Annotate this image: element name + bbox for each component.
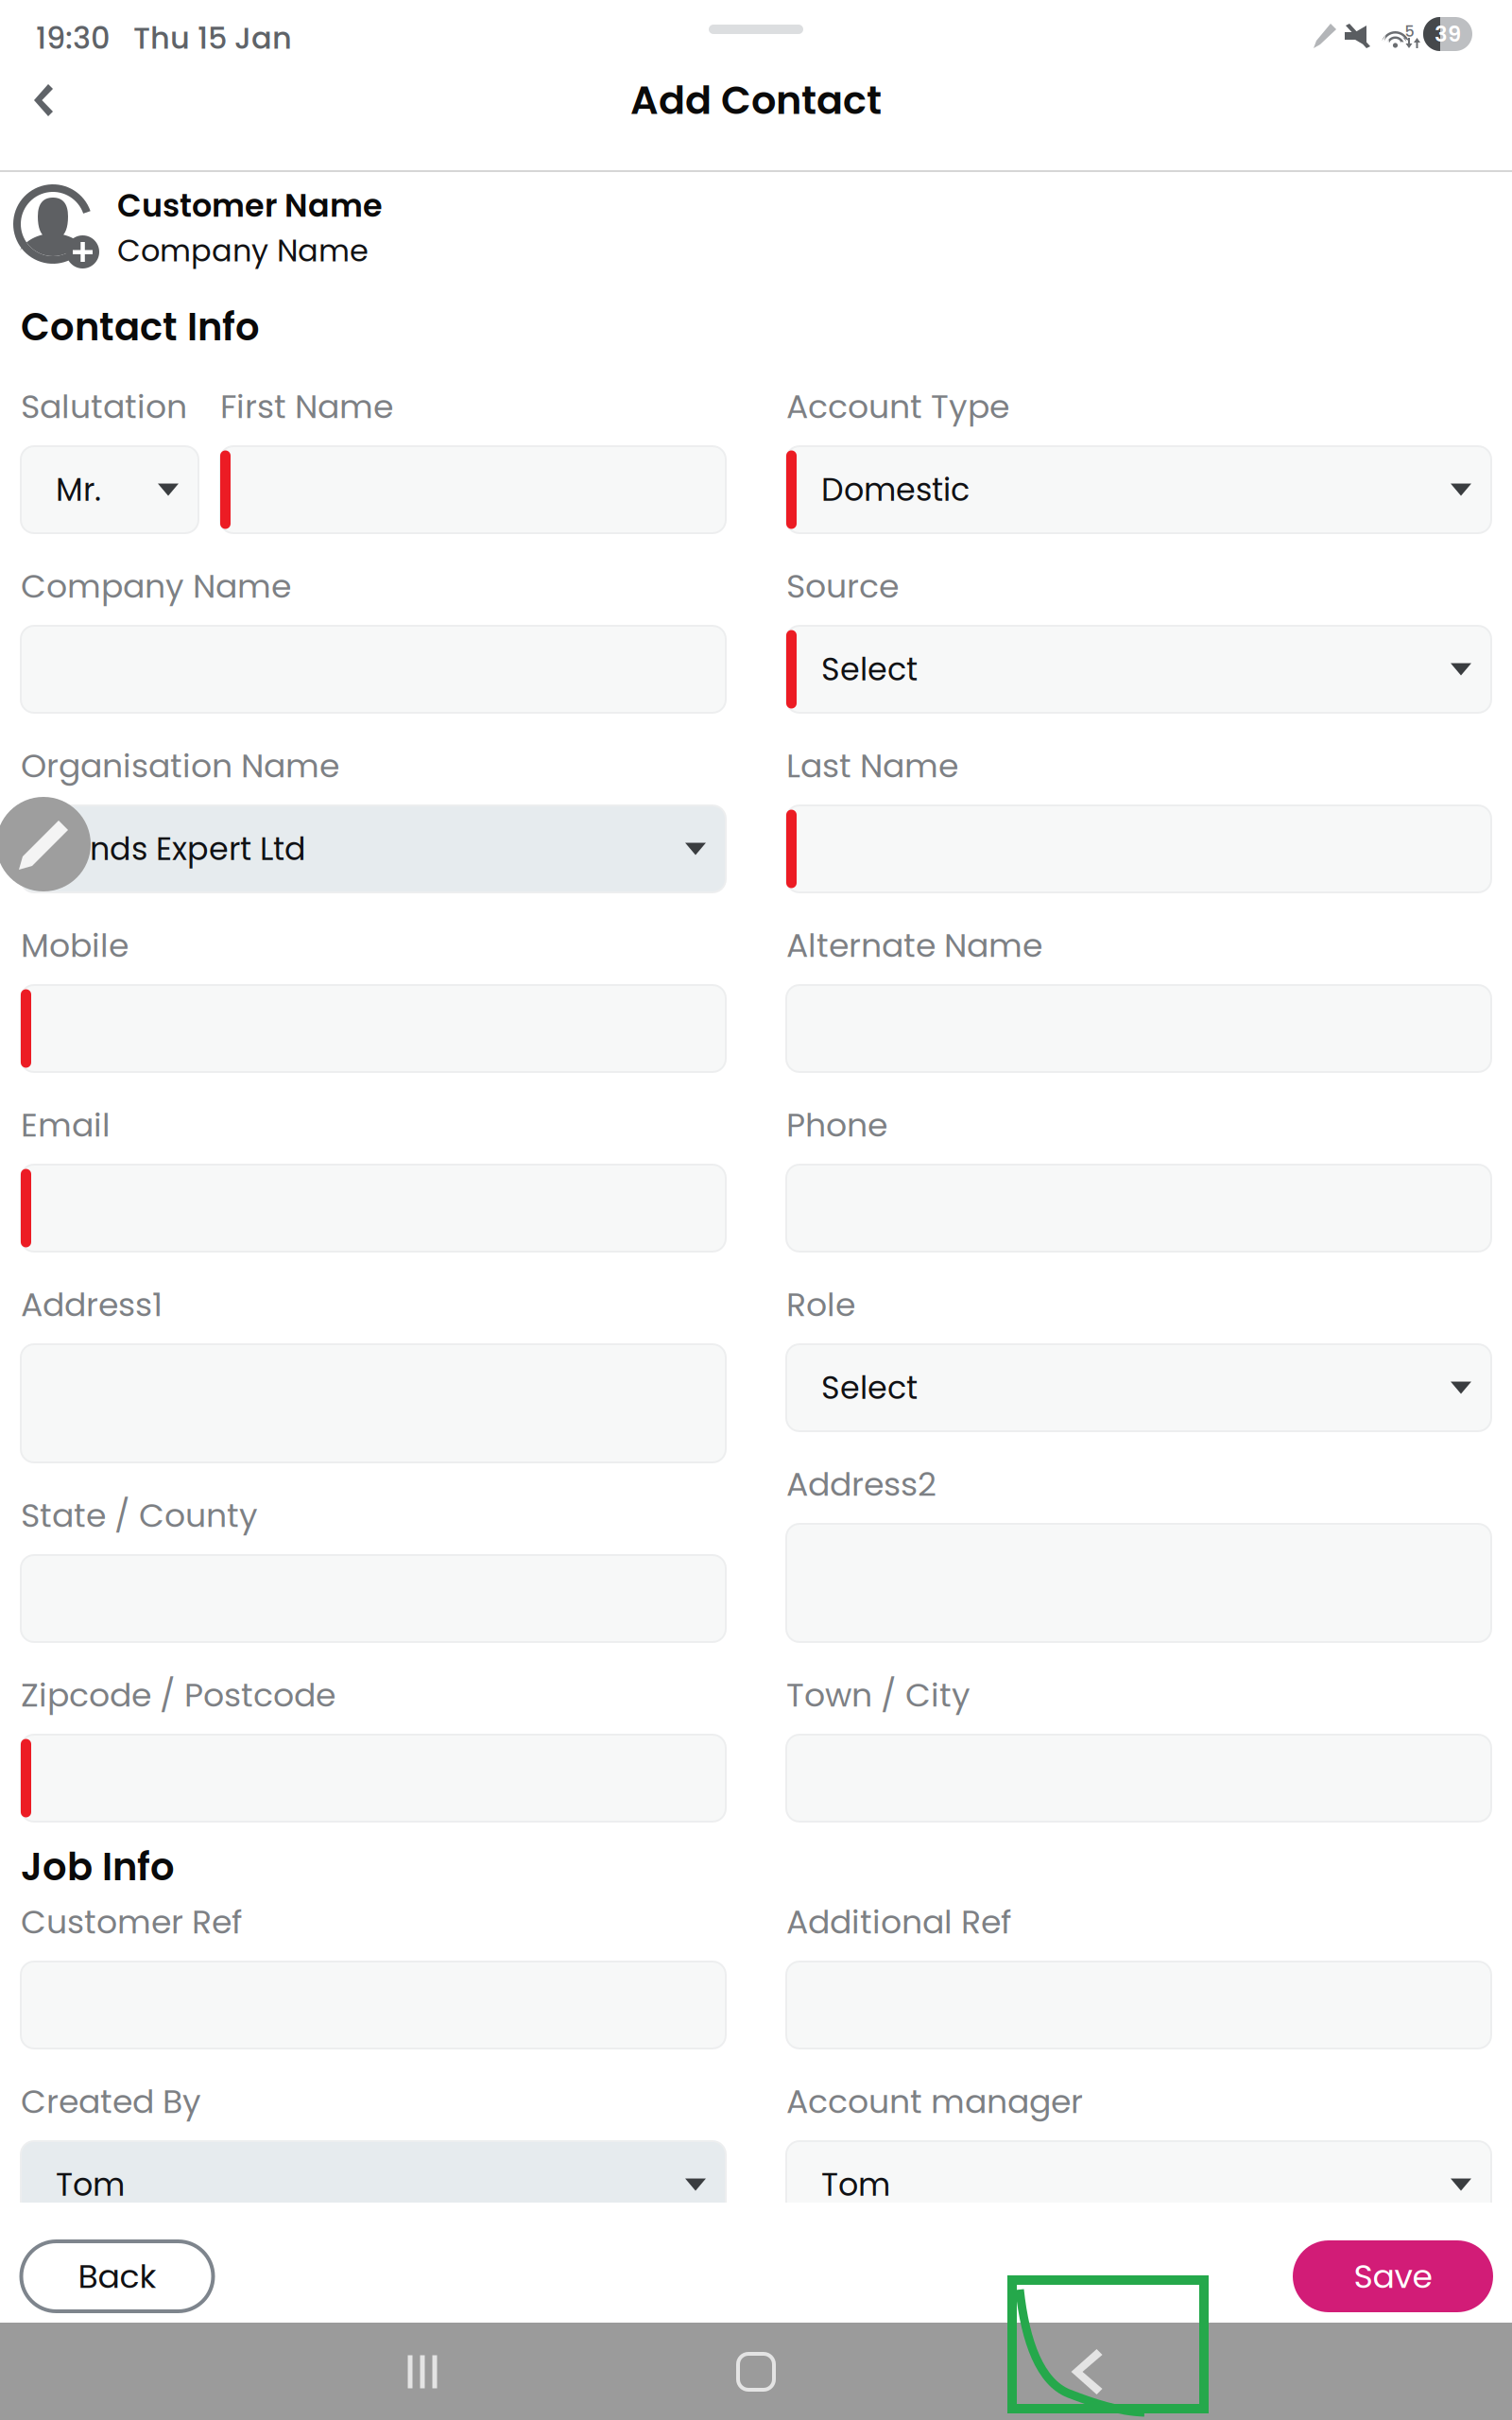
staticText: Select [821,647,918,691]
button[interactable]: Back [21,2241,213,2311]
staticText: Customer Ref [21,1899,242,1945]
staticText: First Name [220,384,393,429]
staticText: Tom [56,2163,125,2207]
staticText: Job Info [21,1841,175,1893]
staticText: Account manager [786,2078,1083,2124]
staticText: 39 [1435,19,1461,49]
staticText: Address2 [786,1461,936,1507]
staticText: Blinds Expert Ltd [56,827,306,871]
button[interactable] [786,805,1491,892]
staticText: Organisation Name [21,743,339,789]
button[interactable]: Save [1293,2240,1493,2312]
staticText: Phone [786,1102,887,1148]
staticText: Additional Ref [786,1899,1011,1945]
button[interactable]: Recents [337,2323,507,2420]
button[interactable] [21,1165,726,1252]
staticText: Save [1354,2253,1432,2299]
staticText: Alternate Name [786,922,1042,968]
staticText: Role [786,1282,855,1327]
button[interactable]: Edit [0,797,91,891]
button[interactable]: Back [1002,2323,1172,2420]
staticText: Source [786,563,899,609]
staticText: Account Type [786,384,1009,429]
staticText: Domestic [821,468,970,512]
staticText: Contact Info [21,301,260,354]
staticText: Salutation [21,384,187,429]
button[interactable] [21,1735,726,1822]
staticText: Mr. [56,468,101,512]
button[interactable]: Back [1,58,86,143]
button[interactable] [220,446,726,533]
staticText: State / County [21,1492,258,1538]
staticText: Created By [21,2078,201,2124]
button[interactable]: Mr. [21,446,198,533]
staticText: Address1 [21,1282,163,1327]
staticText: Select [821,1366,918,1410]
staticText: Thu 15 Jan [133,17,292,59]
button[interactable]: Home [671,2323,841,2420]
staticText: Tom [821,2163,890,2207]
button[interactable]: Domestic [786,446,1491,533]
staticText: Town / City [786,1672,971,1718]
button[interactable]: Blinds Expert Ltd [21,805,726,892]
staticText: 19:30 [36,17,111,59]
staticText: 5 [1405,21,1414,42]
staticText: Last Name [786,743,958,789]
staticText: Mobile [21,922,129,968]
button[interactable] [21,985,726,1072]
button[interactable]: Tom [786,2141,1491,2228]
staticText: Back [78,2253,156,2299]
staticText: Add Contact [630,73,882,128]
button[interactable]: Select [786,626,1491,713]
staticText: Email [21,1102,111,1148]
staticText: Company Name [21,563,291,609]
button[interactable]: Tom [21,2141,726,2228]
button[interactable]: Select [786,1344,1491,1431]
staticText: Zipcode / Postcode [21,1672,335,1718]
staticText: Customer Name [117,184,383,228]
staticText: Company Name [117,230,369,272]
